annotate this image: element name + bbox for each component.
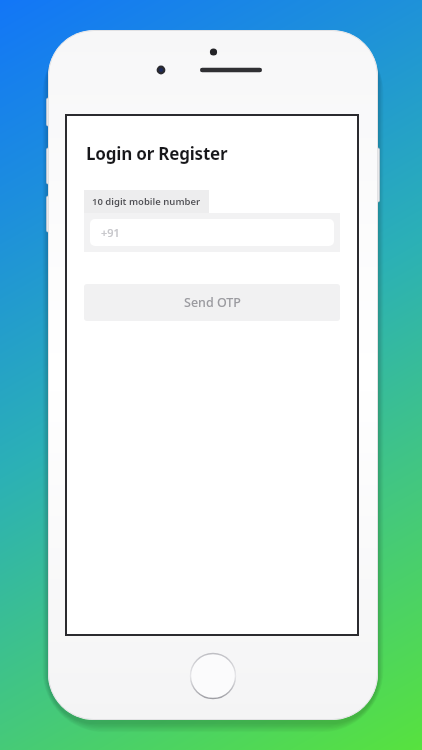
staticText: 10 digit mobile number (92, 195, 201, 208)
button[interactable]: +91 (90, 219, 334, 246)
staticText: Send OTP (184, 294, 241, 311)
staticText: Login or Register (86, 142, 228, 165)
staticText: +91 (101, 225, 120, 240)
button[interactable]: Send OTP (84, 284, 340, 321)
button[interactable]: Home (189, 652, 237, 700)
